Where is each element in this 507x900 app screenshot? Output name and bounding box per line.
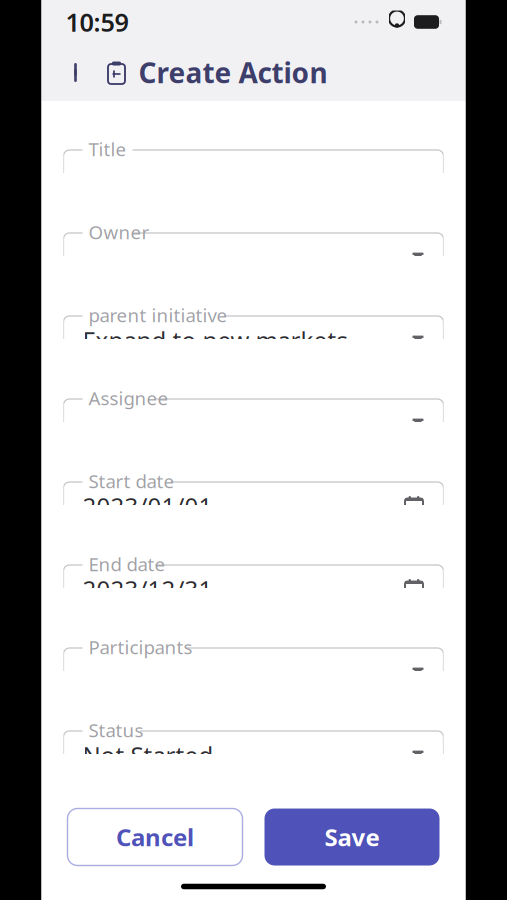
staticText: Start date (88, 469, 174, 493)
staticText: 2023/01/01 (82, 490, 212, 522)
staticText: Status (88, 718, 143, 742)
staticText: parent initiative (88, 303, 227, 327)
button[interactable]: Cancel (67, 808, 242, 865)
staticText: Assignee (88, 386, 168, 410)
button[interactable]: Participants (63, 623, 443, 671)
button[interactable]: Back (57, 50, 97, 94)
staticText: End date (88, 552, 165, 576)
button[interactable]: Status (63, 706, 443, 754)
staticText: Participants (88, 635, 192, 659)
staticText: 2023/12/31 (82, 573, 212, 605)
button[interactable]: Start date (63, 457, 443, 505)
button[interactable]: Owner (63, 208, 443, 256)
button[interactable]: Progress (63, 789, 443, 817)
staticText: Progress (88, 801, 164, 825)
button[interactable]: Title (63, 125, 443, 173)
staticText: Expand to new markets (82, 324, 347, 356)
staticText: Title (88, 137, 126, 161)
staticText: Save (324, 821, 379, 853)
staticText: Owner (88, 220, 149, 244)
staticText: 10:59 (65, 5, 128, 39)
staticText: Create Action (138, 54, 327, 91)
button[interactable]: Save (264, 808, 439, 865)
button[interactable]: Assignee (63, 374, 443, 422)
button[interactable]: End date (63, 540, 443, 588)
staticText: Not Started (82, 739, 213, 771)
button[interactable]: parent initiative (63, 291, 443, 339)
staticText: Cancel (116, 821, 194, 853)
